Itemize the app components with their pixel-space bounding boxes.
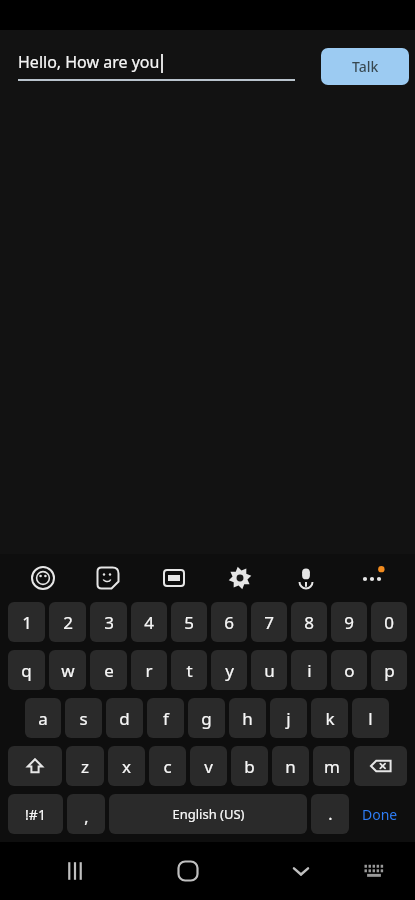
staticText: . (328, 803, 333, 825)
button[interactable]: q (8, 650, 45, 690)
staticText: z (81, 755, 89, 778)
staticText: !#1 (25, 805, 46, 824)
button[interactable]: Emoji (10, 554, 75, 602)
button[interactable]: f (147, 698, 184, 738)
staticText: k (325, 707, 335, 730)
staticText: u (264, 659, 275, 682)
button[interactable]: 7 (251, 602, 287, 642)
staticText: a (38, 707, 48, 730)
button[interactable]: t (171, 650, 207, 690)
staticText: 4 (144, 611, 154, 634)
button[interactable]: , (67, 794, 105, 834)
staticText: d (119, 707, 130, 730)
staticText: Done (362, 805, 398, 824)
button[interactable]: i (291, 650, 327, 690)
button[interactable]: Hide keyboard (279, 849, 323, 893)
staticText: i (307, 659, 312, 682)
button[interactable]: b (231, 746, 268, 786)
staticText: 8 (304, 611, 314, 634)
button[interactable]: Done (353, 794, 407, 834)
button[interactable]: x (108, 746, 145, 786)
staticText: 0 (384, 611, 394, 634)
staticText: 1 (22, 611, 32, 634)
button[interactable]: Shift (8, 746, 62, 786)
button[interactable]: . (311, 794, 349, 834)
button[interactable]: Voice input (273, 554, 339, 602)
button[interactable]: c (149, 746, 186, 786)
button[interactable]: k (311, 698, 348, 738)
button[interactable]: !#1 (8, 794, 63, 834)
staticText: n (285, 755, 296, 778)
staticText: s (79, 707, 88, 730)
button[interactable]: g (188, 698, 225, 738)
button[interactable]: 1 (8, 602, 45, 642)
staticText: r (145, 659, 153, 682)
staticText: f (163, 707, 169, 730)
staticText: , (84, 806, 89, 828)
staticText: 7 (264, 611, 274, 634)
button[interactable]: 6 (211, 602, 247, 642)
staticText: p (384, 659, 395, 682)
button[interactable]: m (313, 746, 350, 786)
staticText: c (163, 755, 172, 778)
staticText: g (201, 707, 212, 730)
staticText: t (186, 659, 193, 682)
staticText: e (104, 659, 114, 682)
staticText: o (344, 659, 355, 682)
staticText: 5 (184, 611, 194, 634)
button[interactable]: 8 (291, 602, 327, 642)
staticText: 9 (344, 611, 354, 634)
button[interactable]: Stickers (75, 554, 141, 602)
staticText: 3 (104, 611, 114, 634)
staticText: h (242, 707, 253, 730)
button[interactable]: a (25, 698, 61, 738)
button[interactable]: v (190, 746, 227, 786)
button[interactable]: h (229, 698, 266, 738)
button[interactable]: z (66, 746, 104, 786)
staticText: q (21, 659, 32, 682)
button[interactable]: l (352, 698, 389, 738)
staticText: English (US) (172, 805, 245, 823)
staticText: b (244, 755, 255, 778)
button[interactable]: n (272, 746, 309, 786)
button[interactable]: 3 (90, 602, 127, 642)
button[interactable]: s (65, 698, 102, 738)
button[interactable]: Talk (321, 48, 409, 85)
staticText: j (286, 707, 291, 730)
staticText: 6 (224, 611, 234, 634)
button[interactable]: d (106, 698, 143, 738)
button[interactable]: 4 (131, 602, 167, 642)
button[interactable]: u (251, 650, 287, 690)
staticText: v (204, 755, 213, 778)
button[interactable]: Backspace (354, 746, 407, 786)
button[interactable]: o (331, 650, 367, 690)
staticText: 2 (63, 611, 73, 634)
button[interactable]: More options (339, 554, 405, 602)
button[interactable]: 9 (331, 602, 367, 642)
staticText: w (61, 659, 75, 682)
button[interactable]: 0 (371, 602, 407, 642)
button[interactable]: Recents (53, 849, 97, 893)
button[interactable]: r (131, 650, 167, 690)
button[interactable]: Settings (207, 554, 273, 602)
button[interactable]: y (211, 650, 247, 690)
staticText: Hello, How are you (18, 51, 160, 73)
button[interactable]: GIF (141, 554, 207, 602)
button[interactable]: j (270, 698, 307, 738)
button[interactable]: 5 (171, 602, 207, 642)
button[interactable]: Switch keyboard (352, 849, 396, 893)
staticText: y (225, 659, 234, 682)
button[interactable]: 2 (49, 602, 86, 642)
staticText: x (122, 755, 131, 778)
button[interactable]: English (US) (109, 794, 307, 834)
button[interactable]: p (371, 650, 407, 690)
button[interactable]: w (49, 650, 86, 690)
button[interactable]: Home (166, 849, 210, 893)
staticText: Talk (352, 57, 379, 76)
staticText: l (368, 707, 373, 730)
staticText: m (324, 755, 340, 778)
button[interactable]: e (90, 650, 127, 690)
